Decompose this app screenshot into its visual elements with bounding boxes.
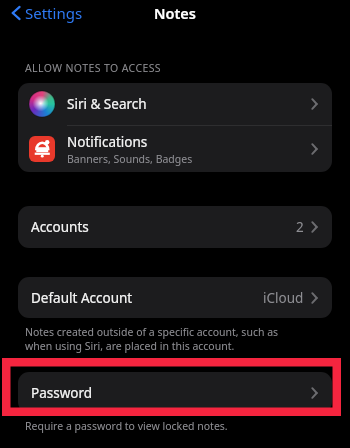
staticText: Settings: [25, 3, 83, 23]
other: Open: [311, 143, 318, 155]
button[interactable]: Accounts: [18, 206, 332, 248]
button[interactable]: Siri & Search: [18, 83, 332, 125]
staticText: ALLOW NOTES TO ACCESS: [25, 61, 162, 75]
other: Open: [311, 292, 318, 304]
staticText: Accounts: [31, 218, 296, 236]
staticText: iCloud: [263, 289, 304, 307]
staticText: Banners, Sounds, Badges: [67, 152, 193, 166]
staticText: Notifications: [67, 133, 148, 151]
staticText: 2: [296, 218, 304, 236]
staticText: Password: [31, 384, 311, 402]
staticText: Notes: [154, 3, 196, 23]
other: Open: [311, 221, 318, 233]
other: Open: [311, 98, 318, 110]
staticText: Siri & Search: [67, 95, 311, 113]
button[interactable]: Settings: [9, 1, 85, 25]
staticText: Require a password to view locked notes.: [25, 419, 228, 433]
button[interactable]: Notifications: [18, 126, 332, 172]
other: Open: [311, 387, 318, 399]
button[interactable]: Default Account: [18, 277, 332, 318]
button[interactable]: Password: [18, 372, 332, 413]
staticText: Notes created outside of a specific acco…: [25, 325, 279, 353]
staticText: Default Account: [31, 289, 263, 307]
